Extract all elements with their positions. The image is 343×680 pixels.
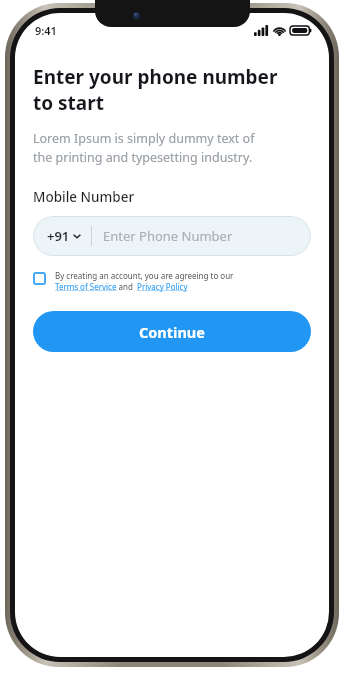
staticText: Enter Phone Number xyxy=(103,227,233,245)
button[interactable]: Continue xyxy=(33,311,311,352)
staticText: Continue xyxy=(139,322,205,342)
staticText: +91 xyxy=(47,227,70,245)
staticText: By creating an account, you are agreeing… xyxy=(55,270,234,281)
button[interactable]: +91 xyxy=(33,216,311,256)
button[interactable]: Agree to terms checkbox xyxy=(33,272,46,285)
staticText: Mobile Number xyxy=(33,188,135,206)
staticText: 9:41 xyxy=(35,23,57,38)
staticText: Terms of Service and Privacy Policy xyxy=(55,281,188,292)
staticText: Lorem Ipsum is simply dummy text of the … xyxy=(33,130,255,166)
staticText: Enter your phone number to start xyxy=(33,64,278,116)
button[interactable]: Agree to terms checkbox xyxy=(33,270,313,292)
button[interactable]: +91 xyxy=(47,227,82,245)
